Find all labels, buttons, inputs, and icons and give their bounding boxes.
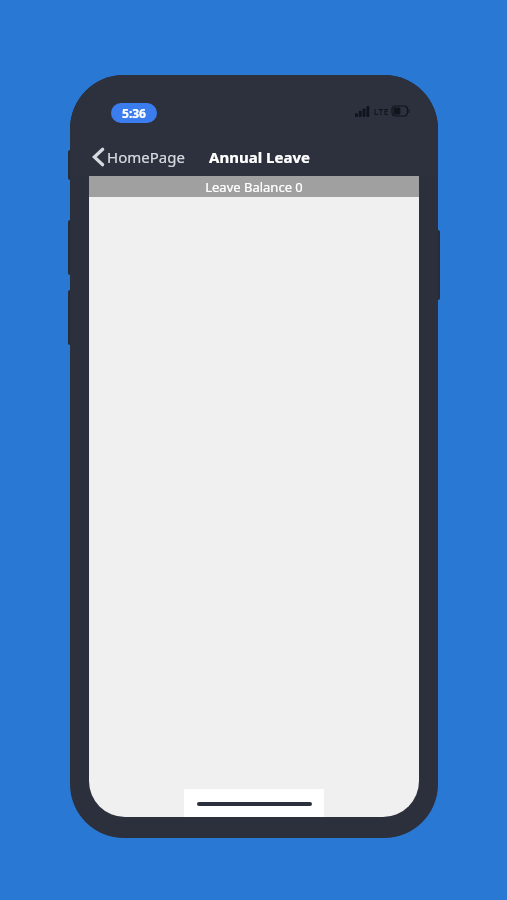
- staticText: HomePage: [107, 147, 185, 167]
- button[interactable]: Leave Balance 0: [89, 176, 419, 197]
- staticText: Leave Balance 0: [205, 178, 303, 196]
- staticText: 5:36: [122, 105, 146, 121]
- staticText: LTE: [373, 105, 389, 117]
- other: Back: [93, 148, 104, 166]
- button[interactable]: Back: [91, 143, 187, 171]
- staticText: Annual Leave: [209, 147, 310, 167]
